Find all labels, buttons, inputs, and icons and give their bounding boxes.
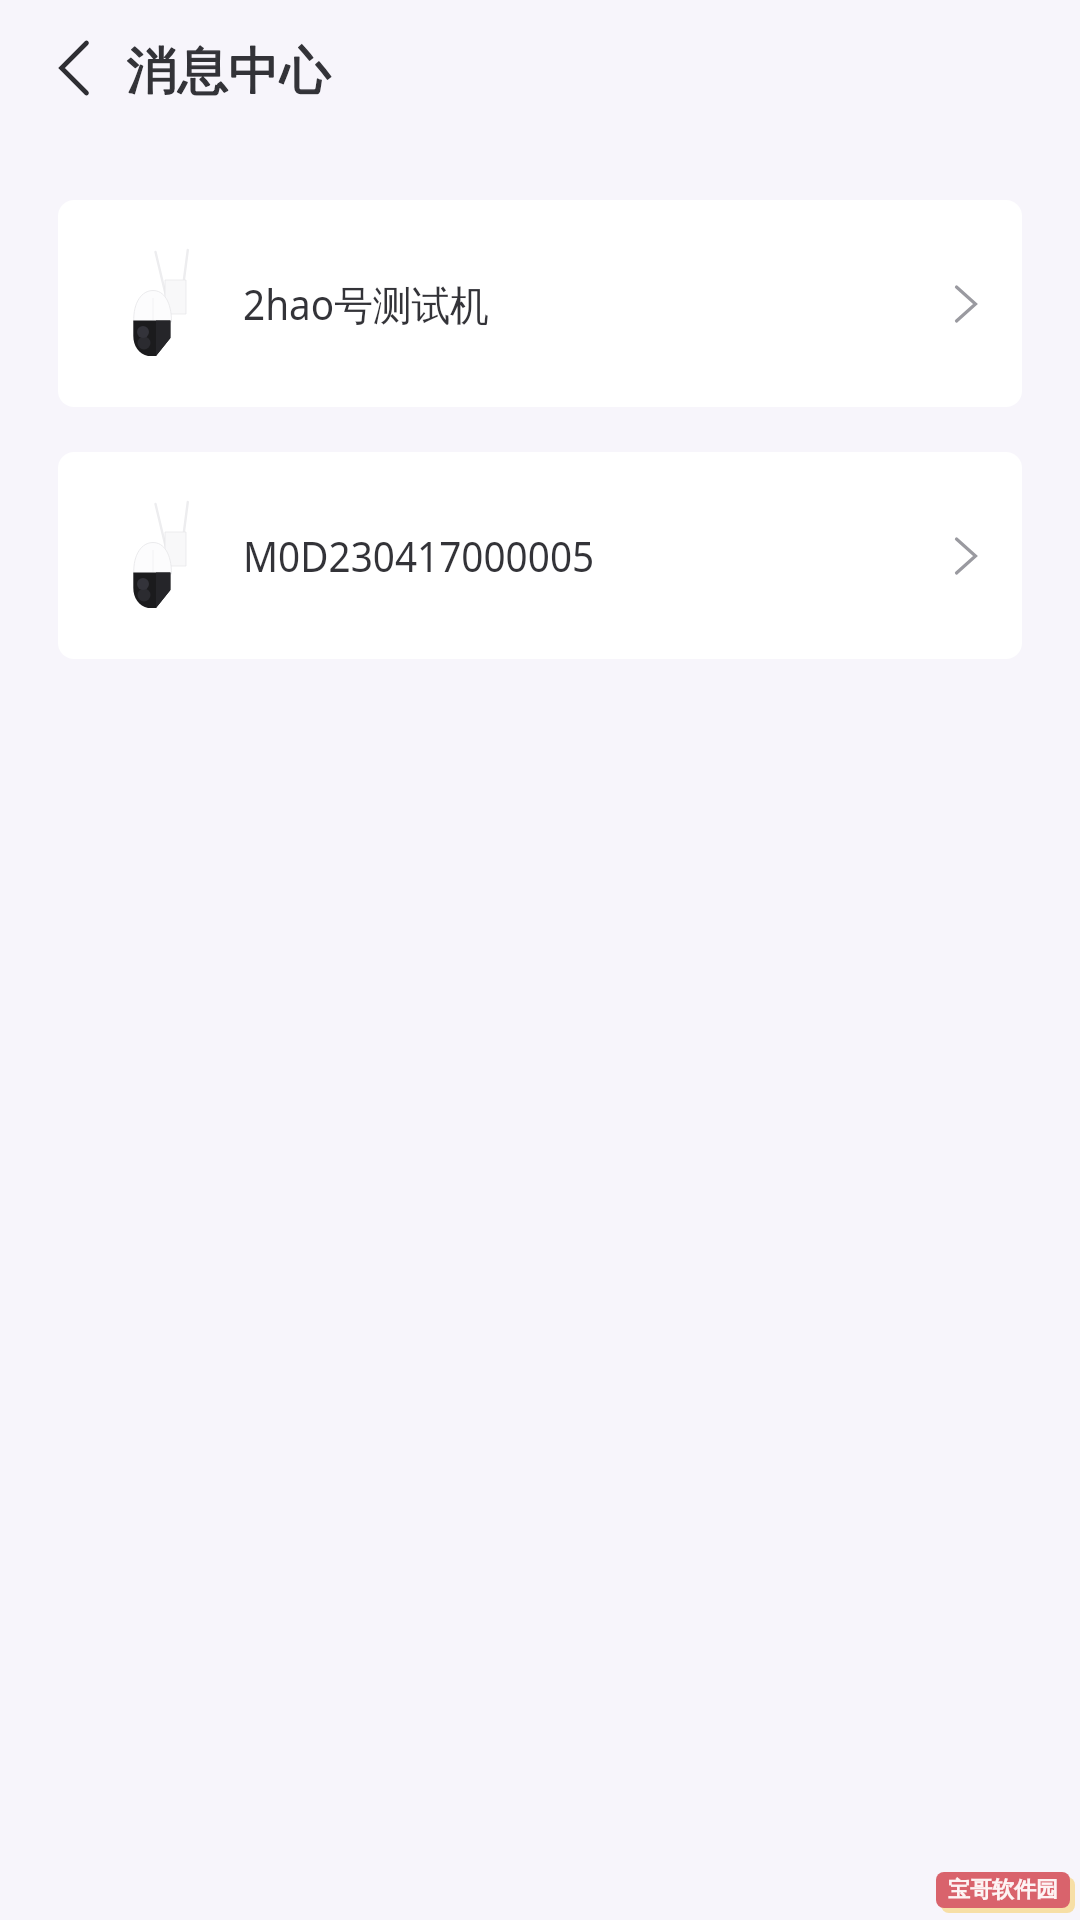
button[interactable]: M0D230417000005 xyxy=(58,452,1022,659)
staticText: 消息中心 xyxy=(127,39,331,103)
staticText: 2hao号测试机 xyxy=(243,276,489,332)
staticText: M0D230417000005 xyxy=(243,528,594,584)
button[interactable]: Back xyxy=(36,30,112,106)
staticText: 消息中心 xyxy=(127,39,331,103)
staticText: 宝哥软件园 xyxy=(948,1876,1058,1904)
button[interactable]: Open M0D230417000005 xyxy=(936,526,996,586)
button[interactable]: 2hao号测试机 xyxy=(58,200,1022,407)
button[interactable]: Open 2hao号测试机 xyxy=(936,274,996,334)
